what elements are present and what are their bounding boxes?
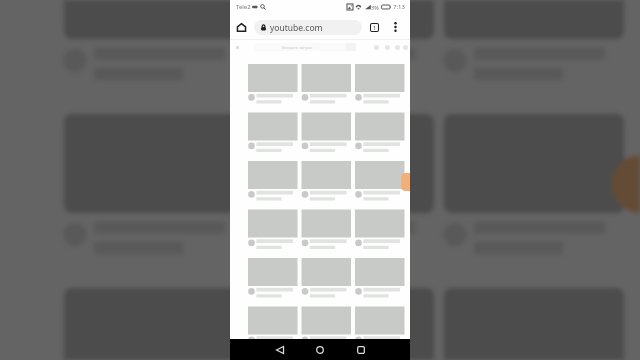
staticText: 1 xyxy=(373,24,377,31)
staticText: youtube.com xyxy=(270,22,323,34)
button[interactable]: Guide menu xyxy=(232,42,242,52)
staticText: Tele2 xyxy=(236,3,251,11)
button[interactable]: More options xyxy=(387,19,403,35)
staticText: Введите запрос xyxy=(282,45,313,50)
button[interactable]: Action xyxy=(403,45,408,50)
button[interactable]: Action xyxy=(374,45,379,50)
button[interactable]: Scroll to top xyxy=(401,173,410,191)
button[interactable]: Action xyxy=(395,45,400,50)
button[interactable]: Home xyxy=(233,19,249,35)
button[interactable]: Введите запрос xyxy=(254,43,346,51)
staticText: 7:13 xyxy=(393,3,405,11)
button[interactable]: youtube.com xyxy=(254,20,362,35)
button[interactable]: Back xyxy=(270,340,290,360)
button[interactable]: Home xyxy=(310,340,330,360)
button[interactable]: Recent apps xyxy=(351,340,371,360)
staticText: 3% xyxy=(371,4,379,11)
button[interactable]: Action xyxy=(385,45,390,50)
button[interactable]: Switch or close tabs, 1 tab open xyxy=(366,19,382,35)
